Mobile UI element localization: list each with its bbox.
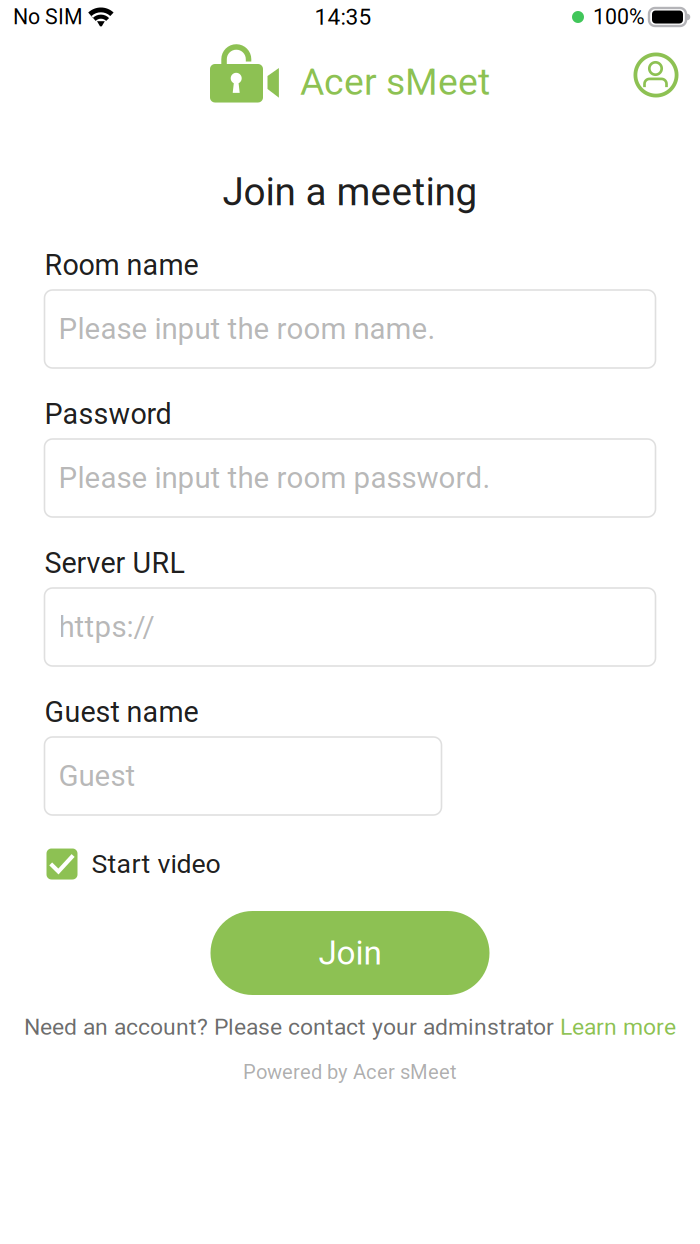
button[interactable]: Start video	[46, 842, 220, 886]
staticText: Guest	[58, 759, 135, 793]
staticText: Password	[44, 397, 171, 431]
staticText: Need an account? Please contact your adm…	[24, 1014, 560, 1040]
button[interactable]: Learn more	[560, 1014, 676, 1040]
staticText: Powered by Acer sMeet	[243, 1060, 457, 1084]
staticText: 100%	[593, 4, 645, 29]
staticText: Guest name	[44, 695, 198, 729]
staticText: Please input the room name.	[58, 312, 435, 346]
staticText: Room name	[44, 248, 198, 282]
staticText: No SIM	[13, 4, 83, 29]
staticText: Join	[318, 933, 381, 973]
staticText: https://	[58, 610, 154, 644]
staticText: Acer sMeet	[300, 60, 490, 104]
staticText: Please input the room password.	[58, 461, 490, 495]
staticText: 14:35	[314, 4, 371, 30]
button[interactable]: Join	[210, 911, 489, 995]
staticText: Server URL	[44, 546, 184, 580]
staticText: Start video	[91, 848, 220, 880]
staticText: Learn more	[560, 1014, 676, 1040]
button[interactable]: Account	[634, 34, 678, 102]
staticText: Join a meeting	[222, 169, 477, 215]
